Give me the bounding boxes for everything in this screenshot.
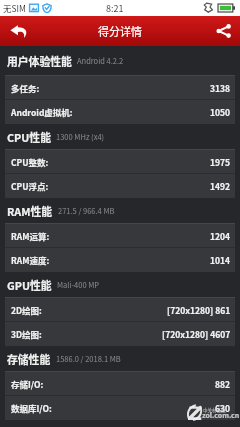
button[interactable]: 数据库I/O: [5, 396, 235, 420]
staticText: 用户体验性能 [7, 53, 72, 69]
button[interactable]: CPU浮点: [5, 174, 235, 198]
staticText: RAM速度: [11, 254, 50, 266]
staticText: CPU浮点: [11, 180, 49, 192]
button[interactable]: Share [206, 16, 240, 46]
button[interactable]: 2D绘图: [5, 298, 235, 321]
staticText: 存储性能 [7, 351, 51, 367]
staticText: Android虚拟机: [11, 106, 73, 118]
staticText: Android 4.2.2 [77, 55, 124, 66]
staticText: 数据库I/O: [11, 402, 52, 414]
staticText: [720x1280] 4607 [162, 328, 231, 340]
staticText: 1014 [210, 254, 231, 266]
staticText: GPU性能 [7, 277, 52, 293]
staticText: 271.5 / 966.4 MB [58, 205, 115, 216]
staticText: 630 [215, 402, 231, 414]
staticText: 8:21 [106, 2, 124, 15]
button[interactable]: 存储I/O: [5, 372, 235, 395]
button[interactable]: Android虚拟机: [5, 100, 235, 124]
staticText: 3138 [210, 82, 231, 94]
staticText: 中关村在线 [203, 407, 226, 414]
staticText: RAM运算: [11, 230, 50, 242]
staticText: 1586.0 / 2018.1 MB [56, 353, 121, 364]
staticText: 882 [215, 378, 231, 390]
button[interactable]: 3D绘图: [5, 322, 235, 346]
button[interactable]: RAM运算: [5, 224, 235, 247]
staticText: CPU整数: [11, 156, 49, 168]
staticText: 1300 MHz (x4) [56, 131, 105, 142]
button[interactable]: Back [0, 16, 38, 46]
staticText: [720x1280] 861 [167, 304, 231, 316]
button[interactable]: RAM速度: [5, 248, 235, 272]
staticText: 1204 [210, 230, 231, 242]
staticText: 2D绘图: [11, 304, 42, 316]
staticText: CPU性能 [7, 129, 51, 145]
staticText: RAM性能 [7, 203, 53, 219]
staticText: 无SIM [3, 2, 26, 14]
staticText: 得分详情 [98, 23, 142, 39]
button[interactable]: CPU整数: [5, 150, 235, 173]
staticText: 1492 [210, 180, 231, 192]
button[interactable]: 多任务: [5, 76, 235, 99]
staticText: 1975 [210, 156, 231, 168]
staticText: 多任务: [11, 82, 40, 94]
staticText: zol.com.cn [202, 410, 240, 420]
staticText: Mali-400 MP [57, 279, 100, 290]
staticText: 1050 [210, 106, 231, 118]
staticText: 3D绘图: [11, 328, 42, 340]
staticText: 存储I/O: [11, 378, 44, 390]
